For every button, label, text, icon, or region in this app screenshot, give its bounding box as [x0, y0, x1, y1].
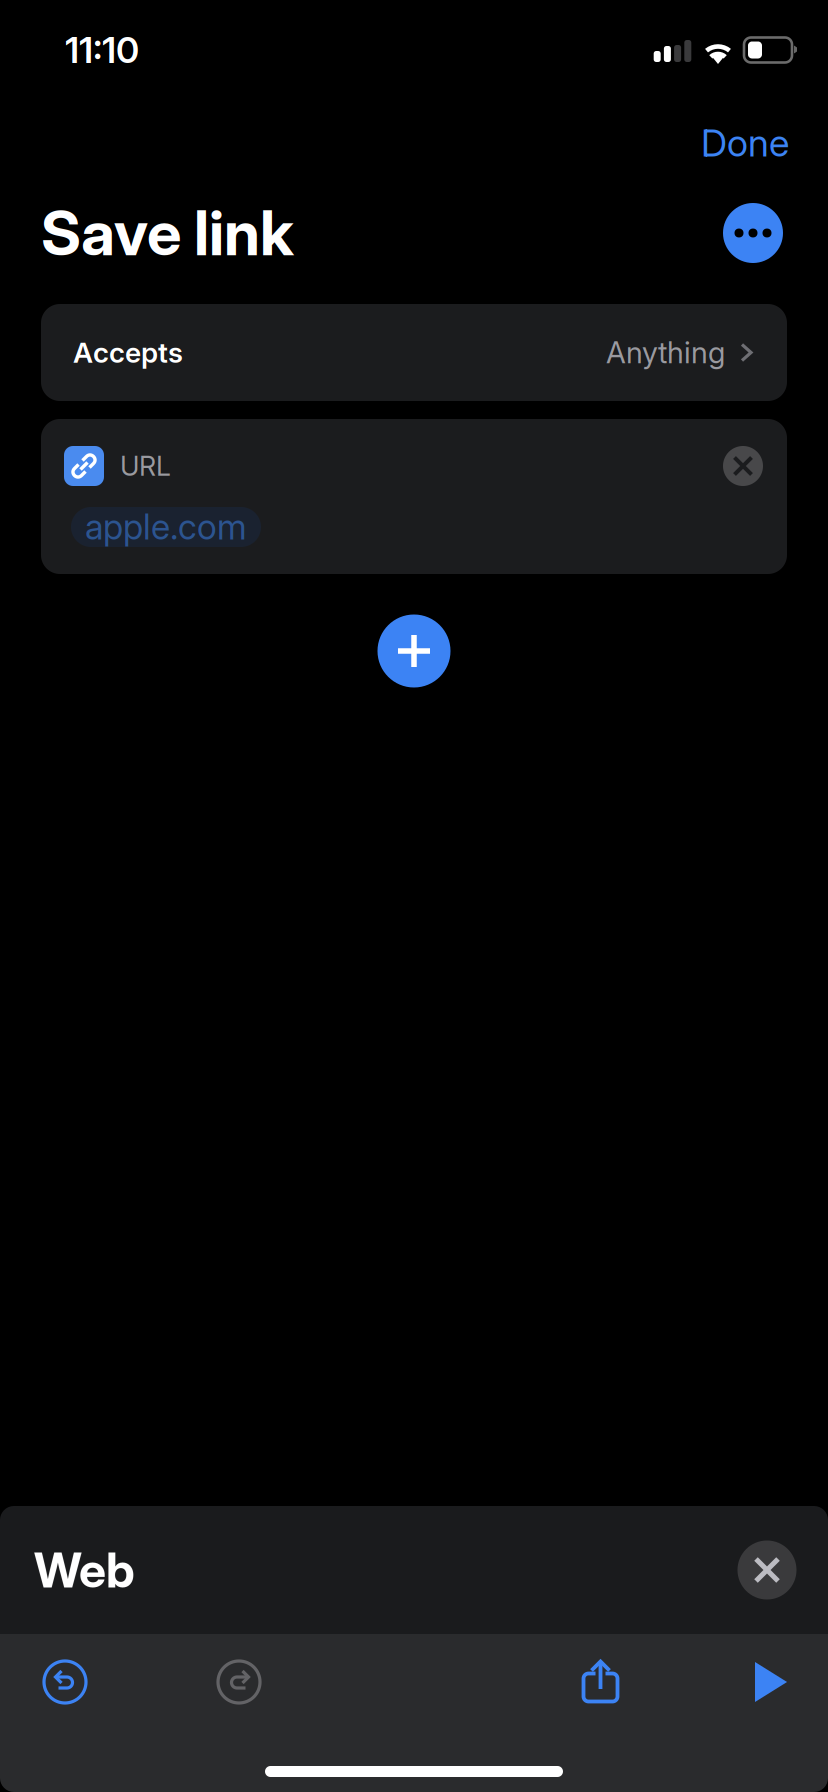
- button[interactable]: Close Web panel: [728, 1531, 806, 1609]
- button[interactable]: Undo: [30, 1647, 100, 1717]
- staticText: Accepts: [73, 336, 183, 369]
- staticText: Save link: [41, 196, 294, 270]
- button[interactable]: Accepts: [41, 304, 787, 401]
- staticText: apple.com: [85, 506, 247, 548]
- button[interactable]: Remove URL field: [714, 437, 772, 495]
- staticText: Done: [701, 120, 789, 166]
- staticText: Web: [34, 1541, 135, 1599]
- button[interactable]: Run shortcut: [731, 1647, 811, 1717]
- staticText: URL: [120, 450, 171, 482]
- button[interactable]: More options: [714, 194, 792, 272]
- button[interactable]: Done: [679, 108, 811, 178]
- staticText: Anything: [606, 335, 725, 370]
- staticText: 11:10: [65, 28, 139, 72]
- button[interactable]: Redo: [204, 1647, 274, 1717]
- button[interactable]: Share: [561, 1647, 641, 1717]
- button[interactable]: Add action: [366, 603, 462, 699]
